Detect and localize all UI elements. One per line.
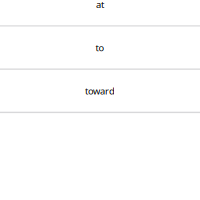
staticText: at (96, 0, 104, 11)
staticText: toward (85, 85, 115, 97)
staticText: to (95, 41, 104, 54)
button[interactable]: at (0, 0, 200, 27)
button[interactable]: toward (0, 70, 200, 113)
button[interactable]: to (0, 27, 200, 70)
